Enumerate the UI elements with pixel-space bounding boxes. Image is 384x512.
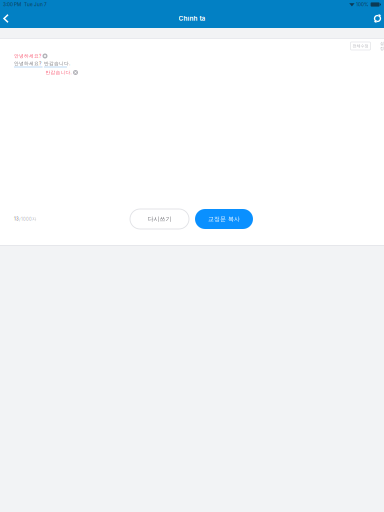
staticText: 설정 [380,41,384,51]
button[interactable]: 교정문 복사 [195,209,253,229]
staticText: /1000자 [19,216,36,222]
staticText: 반갑습니다. [44,61,70,66]
staticText: 교정문 복사 [208,215,240,223]
staticText: 안녕하세요? [14,53,41,59]
staticText: Chính tả [178,15,205,22]
button[interactable]: More [380,42,384,50]
button[interactable]: 다시쓰기 [130,209,189,229]
button[interactable]: Back [2,10,14,27]
button[interactable]: Refresh [369,11,382,26]
staticText: Tue Jun 7 [24,2,47,7]
button[interactable]: 전체수정 [350,42,370,50]
staticText: 안녕하세요? [14,61,41,66]
staticText: 3:00 PM [3,2,21,7]
staticText: 다시쓰기 [147,215,171,223]
staticText: 13 [14,216,19,222]
staticText: 전체수정 [352,43,368,48]
staticText: 100% [356,2,369,7]
staticText: 반갑습니다. [45,70,71,75]
